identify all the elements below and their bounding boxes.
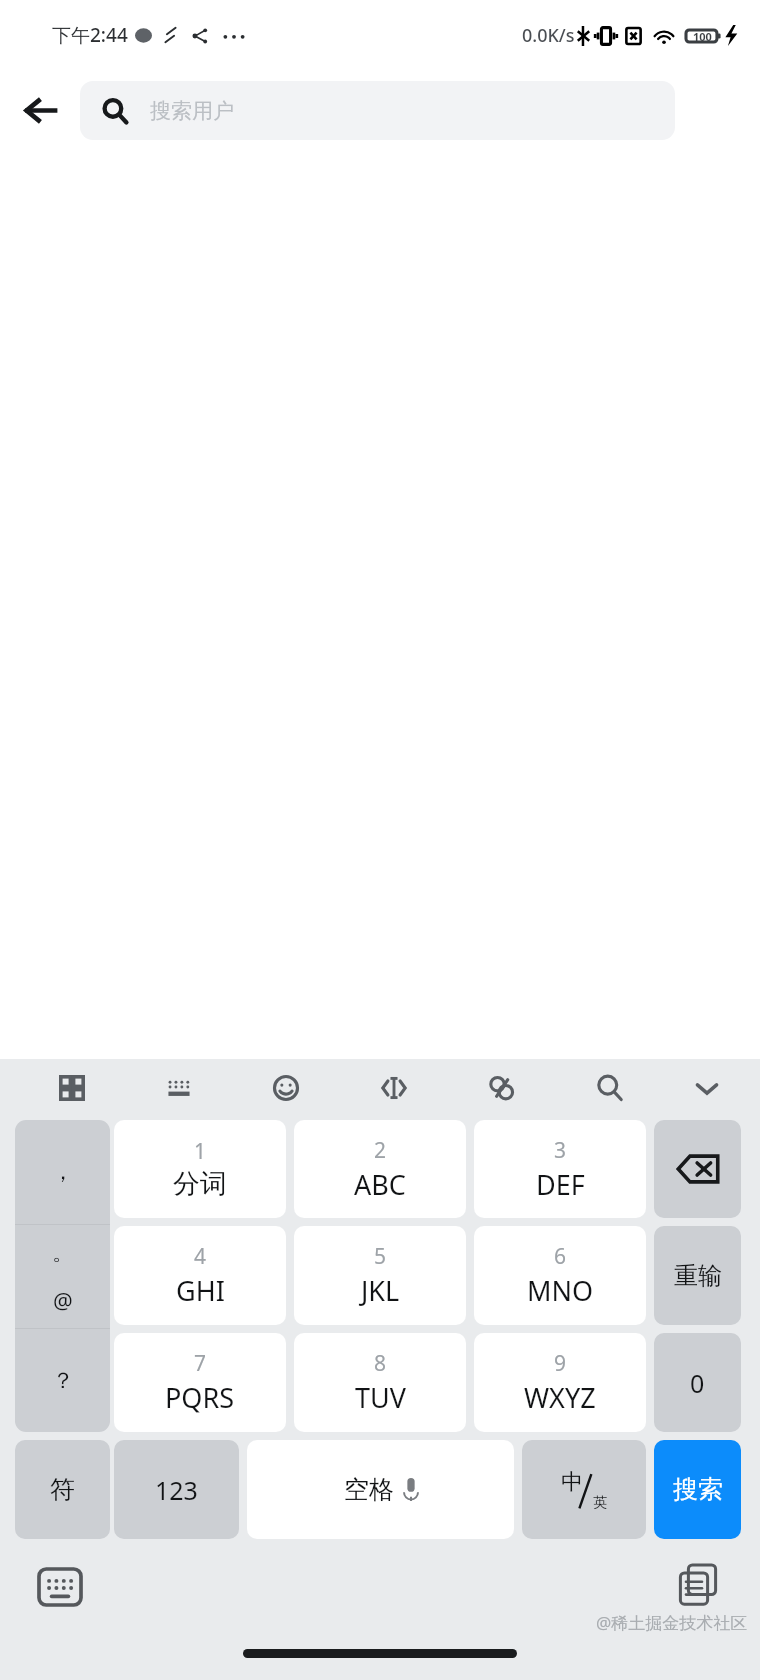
staticText: 4 [194, 1242, 207, 1271]
button[interactable]: 2 [294, 1120, 466, 1218]
button[interactable]: 搜索 [654, 1440, 741, 1539]
staticText: TUV [355, 1379, 406, 1416]
staticText: 5 [374, 1242, 387, 1271]
button[interactable]: 4 [114, 1226, 286, 1325]
staticText: 下午2:44 [52, 22, 128, 48]
button[interactable]: Search [556, 1059, 664, 1116]
staticText: ABC [354, 1166, 406, 1203]
button[interactable]: Switch input method [32, 1559, 88, 1615]
staticText: 空格 [344, 1474, 394, 1505]
button[interactable]: Keyboard layout [125, 1059, 232, 1116]
staticText: 。 [52, 1239, 74, 1267]
button[interactable]: Apps [18, 1059, 125, 1116]
button[interactable]: 中 [522, 1440, 646, 1539]
button[interactable]: 1 [114, 1120, 286, 1218]
button[interactable]: 空格 [247, 1440, 514, 1539]
staticText: DEF [536, 1166, 585, 1203]
staticText: 分词 [173, 1167, 227, 1201]
staticText: 123 [155, 1473, 198, 1507]
staticText: 3 [554, 1136, 567, 1165]
staticText: 7 [194, 1349, 207, 1378]
staticText: 搜索用户 [150, 98, 234, 124]
staticText: JKL [361, 1272, 400, 1309]
button[interactable]: 8 [294, 1333, 466, 1432]
staticText: 8 [374, 1349, 387, 1378]
staticText: 1 [194, 1137, 207, 1166]
button[interactable]: 符 [15, 1440, 110, 1539]
button[interactable]: 重输 [654, 1226, 741, 1325]
staticText: 100 [693, 29, 712, 44]
button[interactable]: 9 [474, 1333, 646, 1432]
button[interactable]: Back [0, 70, 80, 150]
button[interactable]: Emoji [232, 1059, 340, 1116]
staticText: 9 [554, 1349, 567, 1378]
button[interactable]: 7 [114, 1333, 286, 1432]
button[interactable]: ， [15, 1120, 110, 1224]
staticText: 重输 [674, 1261, 722, 1291]
staticText: 2 [374, 1136, 387, 1165]
button[interactable]: 3 [474, 1120, 646, 1218]
staticText: 中 [561, 1468, 583, 1496]
staticText: @稀土掘金技术社区 [596, 1611, 748, 1634]
button[interactable]: 。 [15, 1225, 110, 1328]
button[interactable]: ？ [15, 1329, 110, 1432]
button[interactable]: 0 [654, 1333, 741, 1432]
staticText: WXYZ [524, 1379, 596, 1416]
staticText: MNO [527, 1272, 594, 1309]
button[interactable]: Clipboard [448, 1059, 556, 1116]
staticText: 符 [50, 1474, 75, 1505]
staticText: 搜索 [673, 1474, 723, 1505]
button[interactable]: Hide keyboard [664, 1059, 750, 1116]
staticText: PQRS [165, 1379, 235, 1416]
staticText: GHI [176, 1272, 225, 1309]
button[interactable]: 搜索用户 [80, 81, 675, 140]
button[interactable]: 123 [114, 1440, 239, 1539]
button[interactable]: Delete [654, 1120, 741, 1218]
staticText: ， [52, 1158, 74, 1186]
button[interactable]: 6 [474, 1226, 646, 1325]
button[interactable]: Text cursor [340, 1059, 448, 1116]
staticText: 0.0K/s [522, 23, 575, 48]
button[interactable]: 5 [294, 1226, 466, 1325]
staticText: @ [53, 1285, 73, 1315]
staticText: 0 [690, 1366, 705, 1400]
button[interactable]: Clipboard history [668, 1555, 728, 1615]
staticText: ？ [52, 1367, 74, 1395]
staticText: 6 [554, 1242, 567, 1271]
staticText: 英 [593, 1494, 607, 1512]
